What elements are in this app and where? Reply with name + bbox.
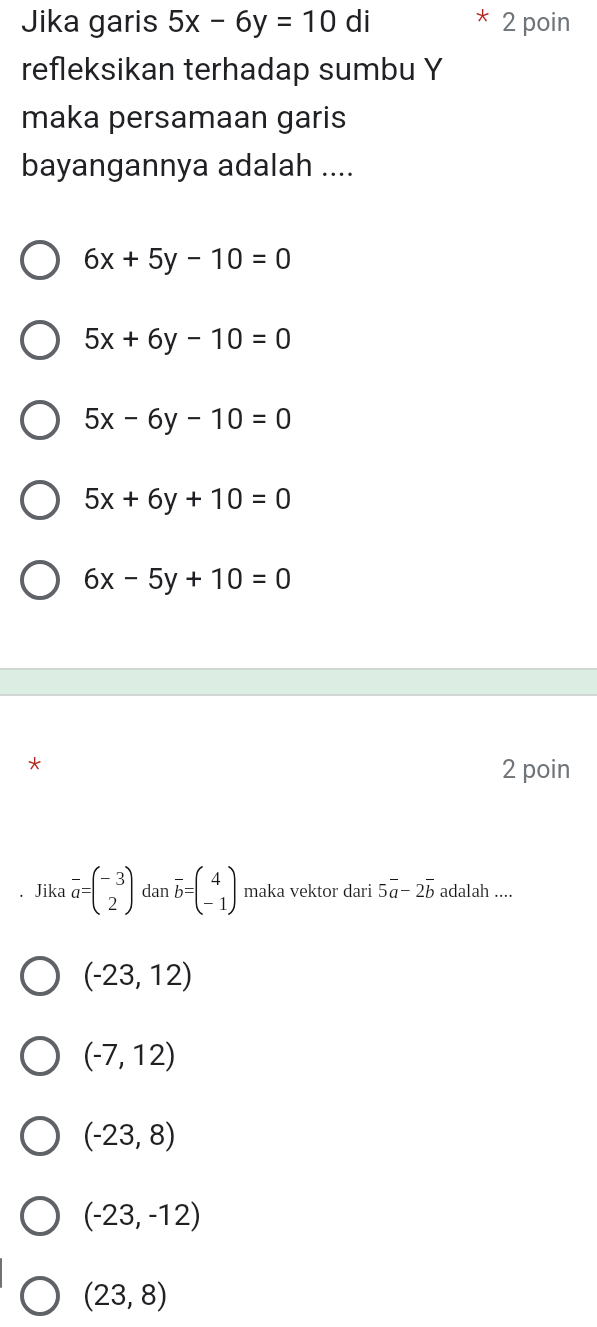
staticText: 5 (378, 880, 388, 901)
staticText: − 2 (400, 880, 425, 901)
staticText: b (174, 881, 184, 902)
staticText: 4 (211, 868, 221, 889)
staticText: adalah .... (435, 880, 514, 901)
staticText: = (81, 880, 92, 901)
button[interactable]: Pilih 6x + 5y − 10 = 0 (0, 220, 597, 300)
staticText: − 3 (100, 868, 125, 889)
staticText: * (28, 750, 42, 786)
other: Pilih (-7, 12) (20, 1036, 60, 1076)
other: Pilih 5x + 6y + 10 = 0 (20, 480, 60, 520)
staticText: (-23, -12) (83, 1197, 202, 1232)
staticText: dan (137, 880, 174, 901)
staticText: 6x + 5y − 10 = 0 (83, 241, 292, 276)
staticText: 6x − 5y + 10 = 0 (83, 561, 292, 596)
staticText: a (389, 881, 399, 902)
other: Pilih 5x − 6y − 10 = 0 (20, 400, 60, 440)
staticText: 2 (108, 893, 118, 914)
staticText: a (71, 881, 81, 902)
button[interactable]: Pilih (-23, 12) (0, 936, 597, 1016)
staticText: − 1 (203, 893, 228, 914)
staticText: (23, 8) (83, 1277, 168, 1312)
staticText: Jika garis 5x − 6y = 10 di refleksikan t… (21, 2, 466, 183)
button[interactable]: Pilih 5x + 6y − 10 = 0 (0, 300, 597, 380)
staticText: (-7, 12) (83, 1037, 176, 1072)
button[interactable]: Pilih (23, 8) (0, 1256, 597, 1327)
other: Pilih 6x + 5y − 10 = 0 (20, 240, 60, 280)
staticText: (-23, 8) (83, 1117, 176, 1152)
other: Pilih (23, 8) (20, 1276, 60, 1316)
other: Pilih (-23, 8) (20, 1116, 60, 1156)
other: Pilih (-23, 12) (20, 956, 60, 996)
staticText: Jika (35, 880, 71, 901)
button[interactable]: Pilih (-23, 8) (0, 1096, 597, 1176)
staticText: 5x + 6y − 10 = 0 (83, 321, 292, 356)
staticText: = (184, 880, 195, 901)
staticText: maka vektor dari (239, 880, 378, 901)
other: Pilih 5x + 6y − 10 = 0 (20, 320, 60, 360)
staticText: 2 poin (502, 755, 571, 784)
other: Pilih 6x − 5y + 10 = 0 (20, 560, 60, 600)
button[interactable]: Pilih 5x − 6y − 10 = 0 (0, 380, 597, 460)
staticText: (-23, 12) (83, 957, 193, 992)
staticText: 5x − 6y − 10 = 0 (83, 401, 292, 436)
staticText: b (425, 881, 435, 902)
staticText: . (19, 880, 24, 901)
other: Pilih (-23, -12) (20, 1196, 60, 1236)
button[interactable]: Pilih 5x + 6y + 10 = 0 (0, 460, 597, 540)
staticText: * (476, 2, 490, 38)
button[interactable]: Pilih 6x − 5y + 10 = 0 (0, 540, 597, 620)
button[interactable]: Pilih (-23, -12) (0, 1176, 597, 1256)
button[interactable]: Pilih (-7, 12) (0, 1016, 597, 1096)
staticText: 5x + 6y + 10 = 0 (83, 481, 292, 516)
staticText: 2 poin (502, 8, 571, 37)
